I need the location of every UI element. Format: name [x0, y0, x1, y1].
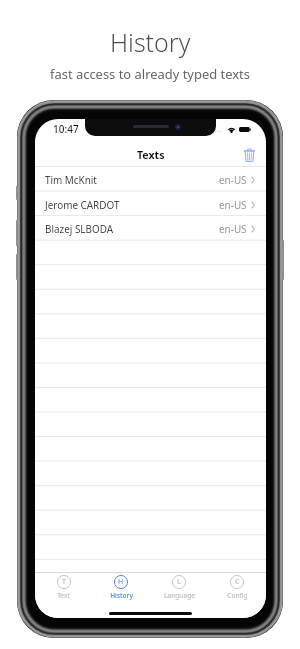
button[interactable]: Blazej SLBODA: [35, 216, 266, 241]
staticText: History: [110, 591, 133, 600]
button[interactable]: Tim McKnit: [35, 167, 266, 192]
button[interactable]: H: [92, 573, 150, 607]
staticText: C: [235, 577, 240, 587]
staticText: Text: [57, 591, 70, 600]
staticText: H: [118, 577, 124, 587]
staticText: en-US: [219, 198, 247, 211]
button[interactable]: T: [35, 573, 92, 607]
staticText: Config: [227, 591, 248, 600]
staticText: en-US: [219, 222, 247, 235]
staticText: Jerome CARDOT: [45, 198, 120, 211]
button[interactable]: Jerome CARDOT: [35, 192, 266, 217]
button[interactable]: C: [208, 573, 266, 607]
staticText: 10:47: [53, 122, 79, 136]
button[interactable]: L: [150, 573, 208, 607]
staticText: fast access to already typed texts: [50, 65, 250, 83]
staticText: History: [110, 25, 191, 59]
staticText: Tim McKnit: [45, 173, 97, 186]
staticText: Texts: [137, 148, 165, 162]
staticText: L: [177, 577, 181, 587]
staticText: T: [62, 577, 66, 587]
button[interactable]: Delete all texts: [241, 146, 257, 164]
staticText: Blazej SLBODA: [45, 222, 113, 235]
staticText: en-US: [219, 173, 247, 186]
staticText: Language: [164, 591, 195, 600]
